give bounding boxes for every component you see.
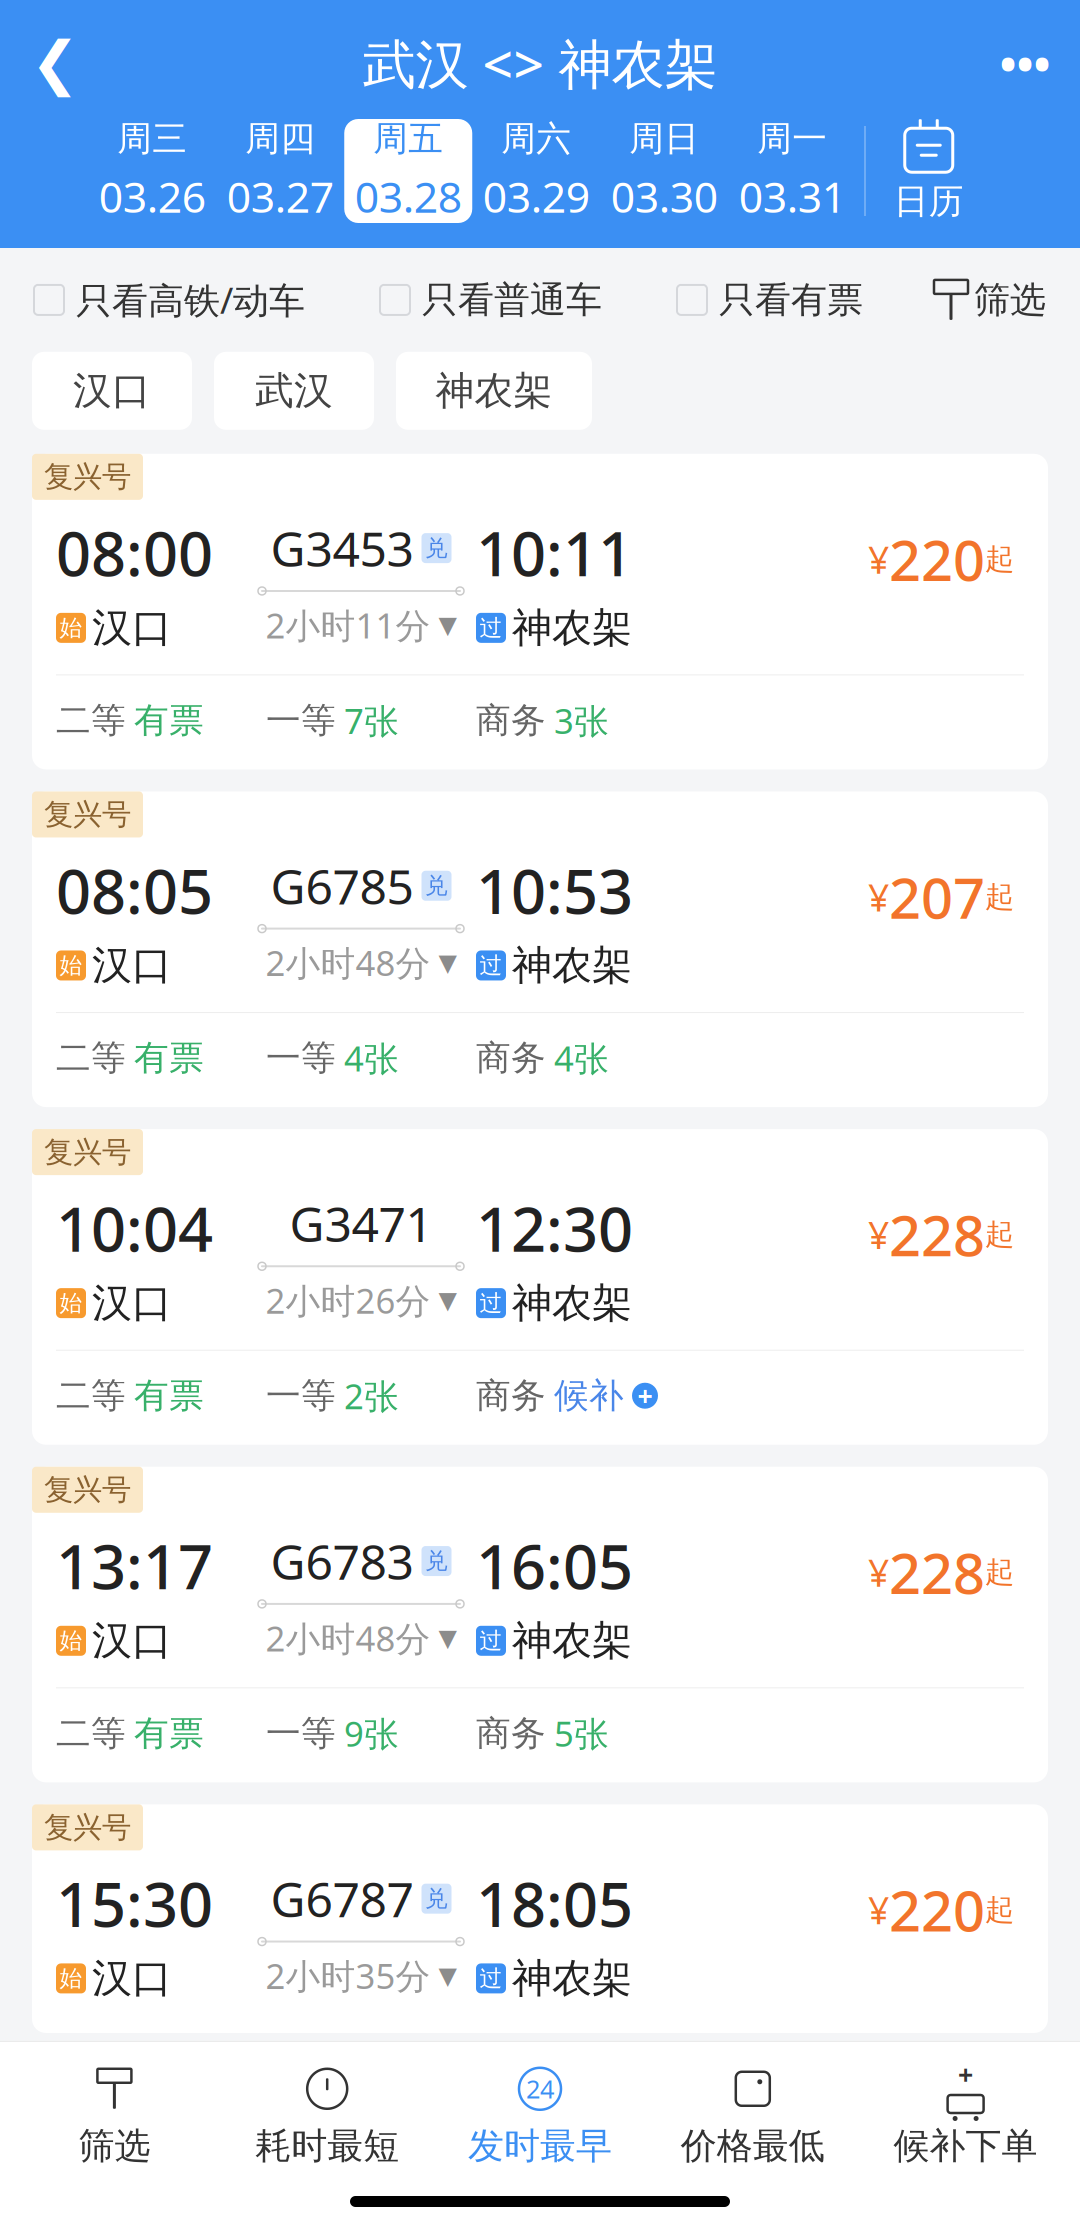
- staticText: 过: [479, 1627, 502, 1655]
- staticText: 商务: [476, 699, 546, 742]
- staticText: ▼: [438, 1287, 456, 1314]
- staticText: 10:53: [476, 849, 633, 931]
- staticText: 03.30: [611, 168, 718, 225]
- staticText: 耗时最短: [255, 2124, 399, 2168]
- button[interactable]: 复兴号: [32, 1804, 1048, 2033]
- staticText: 兑: [425, 1885, 448, 1913]
- button[interactable]: 周五: [344, 119, 472, 223]
- staticText: 二等: [56, 699, 126, 742]
- button[interactable]: 日历: [866, 116, 992, 226]
- staticText: 周日: [629, 117, 699, 160]
- staticText: ¥: [868, 872, 889, 922]
- staticText: 3张: [554, 697, 609, 743]
- staticText: 起: [985, 1554, 1014, 1590]
- staticText: 过: [479, 614, 502, 642]
- staticText: 复兴号: [44, 459, 131, 495]
- staticText: 周六: [501, 117, 571, 160]
- button[interactable]: 耗时最短: [221, 2056, 434, 2178]
- button[interactable]: 只看有票: [677, 278, 863, 322]
- staticText: 起: [985, 879, 1014, 915]
- button[interactable]: 只看普通车: [380, 278, 602, 322]
- staticText: 汉口: [73, 367, 151, 415]
- staticText: 兑: [425, 534, 448, 562]
- staticText: ▼: [438, 1962, 456, 1989]
- button[interactable]: 复兴号: [32, 1467, 1048, 1782]
- staticText: ▼: [438, 611, 456, 639]
- staticText: 过: [479, 1289, 502, 1317]
- button[interactable]: 周三: [88, 119, 216, 223]
- staticText: 二等: [56, 1712, 126, 1755]
- button[interactable]: 武汉: [214, 352, 374, 430]
- staticText: 只看普通车: [422, 278, 602, 322]
- staticText: 18:05: [476, 1862, 633, 1944]
- staticText: 始: [59, 1289, 82, 1317]
- staticText: 228: [889, 1535, 985, 1609]
- staticText: 汉口: [92, 1279, 172, 1328]
- staticText: ▼: [438, 949, 456, 976]
- staticText: 起: [985, 541, 1014, 577]
- button[interactable]: 返回: [0, 18, 110, 108]
- staticText: 神农架: [435, 367, 552, 415]
- staticText: 复兴号: [44, 1134, 131, 1170]
- button[interactable]: 神农架: [396, 352, 592, 430]
- staticText: ¥: [868, 534, 889, 584]
- staticText: 2小时48分: [265, 940, 430, 986]
- staticText: 220: [889, 1873, 985, 1947]
- staticText: 二等: [56, 1374, 126, 1417]
- staticText: ¥: [868, 1885, 889, 1935]
- staticText: 08:00: [56, 512, 213, 593]
- staticText: 汉口: [92, 603, 172, 652]
- staticText: 只看高铁/动车: [76, 276, 305, 324]
- button[interactable]: 周日: [600, 119, 728, 223]
- staticText: 神农架: [512, 941, 632, 990]
- staticText: 10:11: [476, 512, 633, 593]
- staticText: 周三: [117, 117, 187, 160]
- button[interactable]: 周四: [216, 119, 344, 223]
- staticText: 207: [889, 860, 985, 934]
- button[interactable]: 只看高铁/动车: [34, 276, 305, 324]
- button[interactable]: 筛选: [938, 278, 1046, 322]
- staticText: 有票: [134, 699, 204, 742]
- staticText: 周四: [245, 117, 315, 160]
- button[interactable]: 复兴号: [32, 791, 1048, 1107]
- staticText: 候补: [554, 1374, 624, 1417]
- staticText: 神农架: [512, 1279, 632, 1328]
- button[interactable]: 发时最早: [434, 2056, 646, 2178]
- button[interactable]: 价格最低: [646, 2056, 859, 2178]
- staticText: 始: [59, 1627, 82, 1655]
- staticText: ¥: [868, 1547, 889, 1597]
- staticText: 03.27: [227, 168, 334, 225]
- staticText: 12:30: [476, 1187, 633, 1268]
- staticText: 兑: [425, 872, 448, 900]
- staticText: ❮: [30, 30, 79, 96]
- button[interactable]: 周一: [728, 119, 856, 223]
- staticText: 始: [59, 952, 82, 979]
- staticText: 03.29: [483, 168, 590, 225]
- staticText: 商务: [476, 1712, 546, 1755]
- staticText: 2张: [344, 1373, 399, 1419]
- button[interactable]: 复兴号: [32, 454, 1048, 769]
- staticText: 有票: [134, 1037, 204, 1079]
- staticText: 神农架: [512, 1616, 632, 1665]
- staticText: 5张: [554, 1710, 609, 1756]
- staticText: 复兴号: [44, 1472, 131, 1508]
- button[interactable]: 候补下单: [859, 2056, 1072, 2178]
- staticText: 9张: [344, 1710, 399, 1756]
- staticText: +: [637, 1378, 652, 1413]
- staticText: 220: [889, 522, 985, 596]
- staticText: 兑: [425, 1547, 448, 1575]
- staticText: 2小时26分: [265, 1277, 430, 1323]
- button[interactable]: 周六: [472, 119, 600, 223]
- button[interactable]: 筛选: [8, 2056, 221, 2178]
- staticText: 周五: [373, 117, 443, 160]
- staticText: 03.26: [99, 168, 206, 225]
- staticText: 起: [985, 1217, 1014, 1253]
- staticText: 候补下单: [894, 2124, 1038, 2168]
- button[interactable]: 复兴号: [32, 1129, 1048, 1445]
- staticText: 一等: [266, 699, 336, 742]
- staticText: 一等: [266, 1374, 336, 1417]
- button[interactable]: 汉口: [32, 352, 192, 430]
- staticText: 13:17: [56, 1525, 213, 1606]
- button[interactable]: 更多: [970, 18, 1080, 108]
- staticText: 汉口: [92, 1616, 172, 1665]
